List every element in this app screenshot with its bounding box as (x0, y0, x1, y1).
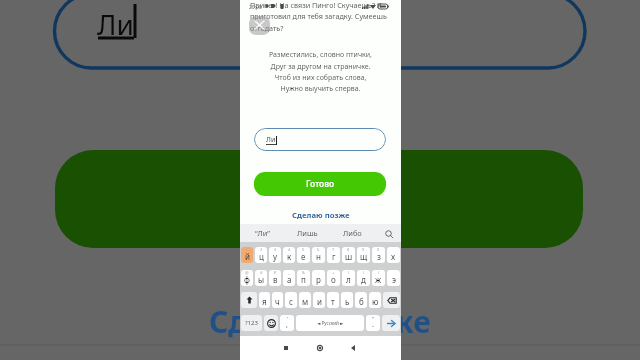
staticText: ы (258, 274, 265, 285)
button[interactable]: м (299, 292, 311, 308)
button[interactable]: ₽ (269, 270, 281, 286)
button[interactable]: / (372, 270, 385, 286)
button[interactable]: 3 (269, 247, 281, 263)
button[interactable]: Enter (382, 315, 400, 331)
button[interactable]: Symbols (241, 315, 262, 331)
staticText: ’ (287, 316, 288, 323)
staticText: 0 (377, 247, 380, 252)
staticText: 1 (246, 247, 249, 252)
button[interactable]: с (285, 292, 297, 308)
button[interactable]: Emoji (264, 315, 278, 331)
button[interactable]: ю (369, 292, 381, 308)
staticText: п (301, 274, 306, 285)
staticText: р (316, 274, 321, 285)
staticText: а (287, 274, 292, 285)
button[interactable]: & (297, 270, 310, 286)
staticText: 20:08 (249, 4, 262, 11)
staticText: 4 (288, 247, 291, 252)
staticText: ₽ (274, 270, 277, 275)
staticText: й (245, 251, 250, 262)
staticText: ◄ Русский ► (317, 320, 344, 326)
button[interactable]: ь (341, 292, 353, 308)
staticText: 7 (332, 247, 335, 252)
button[interactable]: Готово (254, 172, 386, 196)
staticText: г (332, 251, 336, 262)
staticText: т (331, 296, 335, 307)
staticText: , (286, 320, 288, 330)
staticText: д (361, 274, 366, 285)
staticText: з (377, 251, 381, 262)
staticText: ч (275, 296, 280, 307)
staticText: ш (345, 251, 353, 262)
button[interactable]: Home (312, 340, 327, 355)
staticText: 3 (274, 247, 277, 252)
button[interactable]: т (327, 292, 339, 308)
staticText: Ли (266, 135, 276, 145)
button[interactable]: Либо (330, 224, 375, 242)
button[interactable]: 6 (312, 247, 325, 263)
staticText: у (273, 251, 278, 262)
button[interactable]: Лишь (285, 224, 330, 242)
button[interactable]: @ (241, 270, 253, 286)
button[interactable]: + (327, 270, 340, 286)
button[interactable]: 0 (372, 247, 385, 263)
button[interactable]: Recents (278, 340, 293, 355)
button[interactable]: ” (366, 315, 380, 331)
button[interactable]: ч (272, 292, 283, 308)
staticText: Либо (343, 228, 362, 238)
staticText: ?123 (245, 319, 258, 327)
button[interactable]: “Ли” (240, 224, 285, 242)
button[interactable]: Back (345, 340, 360, 355)
staticText: щ (360, 251, 368, 262)
button[interactable]: Backspace (383, 292, 400, 308)
button[interactable]: Close (249, 16, 270, 35)
button[interactable]: я (259, 292, 270, 308)
button[interactable]: 1 (241, 247, 253, 263)
button[interactable]: 5 (297, 247, 310, 263)
staticText: х (391, 251, 396, 262)
staticText: _ (288, 270, 290, 275)
button[interactable]: 9 (357, 247, 370, 263)
staticText: 6 (317, 247, 320, 252)
button[interactable]: Shift (241, 292, 257, 308)
button[interactable]: э (387, 270, 400, 286)
button[interactable]: 7 (327, 247, 340, 263)
button[interactable]: Search (375, 224, 401, 242)
button[interactable]: - (312, 270, 325, 286)
staticText: в (273, 274, 278, 285)
staticText: ц (259, 251, 264, 262)
staticText: “Ли” (255, 228, 271, 238)
staticText: @ (245, 270, 249, 275)
staticText: э (392, 274, 396, 285)
button[interactable]: Ли (254, 128, 386, 151)
staticText: 9 (362, 247, 365, 252)
button[interactable]: ) (357, 270, 370, 286)
staticText: Привет! На связи Пинго! Скучаешь? Я приг… (250, 0, 393, 33)
button[interactable]: 2 (255, 247, 267, 263)
button[interactable]: # (255, 270, 267, 286)
staticText: ) (363, 270, 365, 275)
button[interactable]: б (355, 292, 367, 308)
staticText: ф (244, 274, 250, 285)
button[interactable]: Space (296, 315, 364, 331)
staticText: Лишь (297, 228, 318, 238)
button[interactable]: и (313, 292, 325, 308)
staticText: . (372, 320, 374, 330)
staticText: к (287, 251, 292, 262)
button[interactable]: 8 (342, 247, 355, 263)
staticText: ( (348, 270, 350, 275)
button[interactable]: Сделаю позже (240, 209, 401, 221)
staticText: ж (375, 274, 382, 285)
staticText: Готово (306, 178, 335, 190)
button[interactable]: _ (283, 270, 295, 286)
button[interactable]: ’ (280, 315, 294, 331)
button[interactable]: 4 (283, 247, 295, 263)
staticText: л (346, 274, 351, 285)
staticText: е (301, 251, 306, 262)
staticText: # (260, 270, 263, 275)
staticText: с (289, 296, 293, 307)
button[interactable]: ( (342, 270, 355, 286)
button[interactable]: х (387, 247, 400, 263)
staticText: - (318, 270, 320, 275)
staticText: / (378, 270, 380, 275)
